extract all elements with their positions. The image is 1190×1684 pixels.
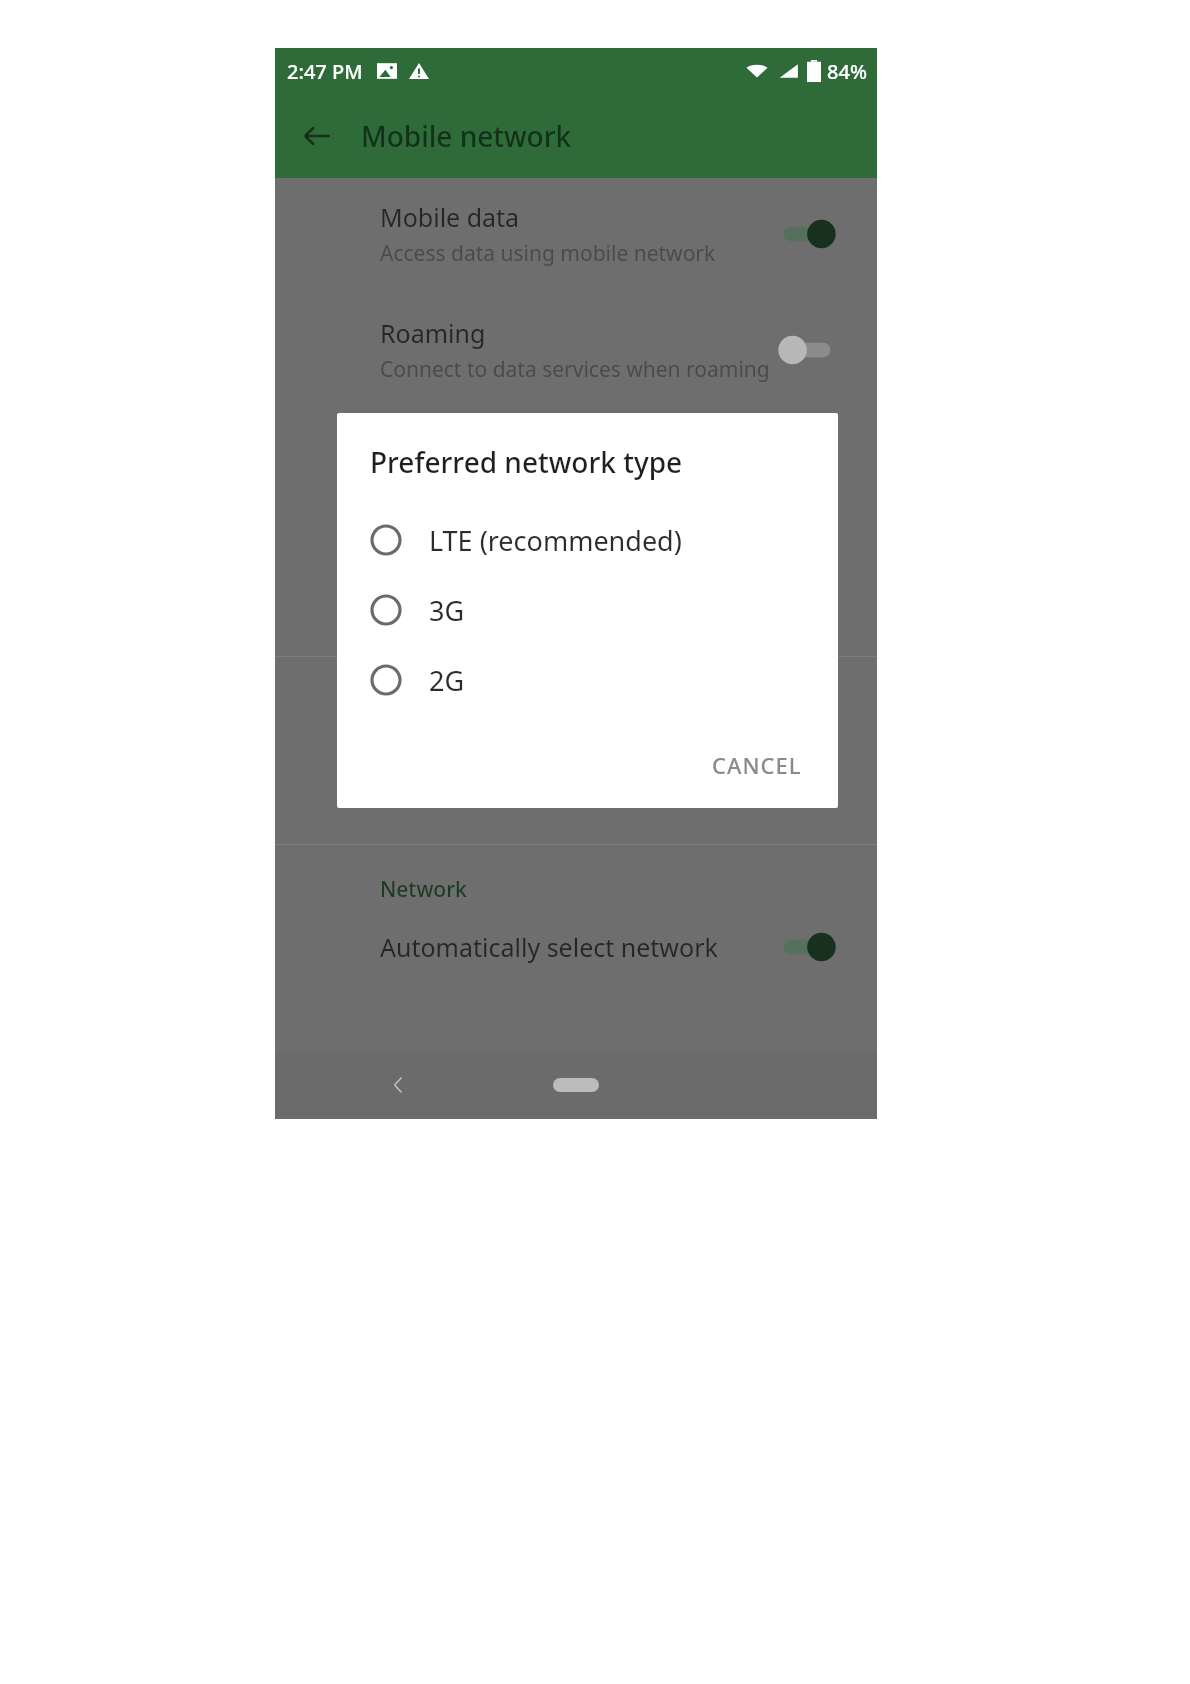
staticText: 1.2 GB used xyxy=(380,471,498,500)
button[interactable]: Home xyxy=(553,1078,599,1092)
staticText: 84% xyxy=(827,58,867,85)
staticText: Data usage xyxy=(380,432,513,466)
button[interactable]: Data usage xyxy=(275,432,877,500)
staticText: Calling xyxy=(380,687,449,716)
button[interactable]: 2G xyxy=(337,645,838,715)
staticText: 2G xyxy=(429,662,465,699)
button[interactable]: Back xyxy=(375,1061,423,1109)
button[interactable]: Wi-Fi calling xyxy=(275,740,877,808)
staticText: Preferred network type xyxy=(380,548,653,582)
staticText: 2:47 PM xyxy=(287,58,363,85)
button[interactable]: 3G xyxy=(337,575,838,645)
button[interactable]: LTE (recommended) xyxy=(337,505,838,575)
staticText: Connect to data services when roaming xyxy=(380,355,770,384)
button[interactable]: CANCEL xyxy=(698,740,816,790)
button[interactable]: Automatically select network xyxy=(275,930,877,964)
button[interactable] xyxy=(779,930,835,964)
staticText: 3G xyxy=(429,592,465,629)
button[interactable] xyxy=(779,217,835,251)
staticText: LTE (recommended) xyxy=(380,587,577,616)
staticText: Preferred network type xyxy=(370,443,683,481)
staticText: Automatically select network xyxy=(380,930,718,964)
staticText: Access data using mobile network xyxy=(380,239,716,268)
staticText: CANCEL xyxy=(712,750,802,780)
staticText: LTE (recommended) xyxy=(429,522,682,559)
staticText: Mobile network xyxy=(361,117,572,155)
staticText: Roaming xyxy=(380,316,486,350)
button[interactable] xyxy=(779,333,835,367)
button[interactable]: Preferred network type xyxy=(275,548,877,616)
button[interactable]: Back xyxy=(289,108,345,164)
button[interactable]: Roaming xyxy=(275,316,877,384)
staticText: Network xyxy=(380,875,467,904)
button[interactable]: Mobile data xyxy=(275,200,877,268)
staticText: Mobile data xyxy=(380,200,520,234)
